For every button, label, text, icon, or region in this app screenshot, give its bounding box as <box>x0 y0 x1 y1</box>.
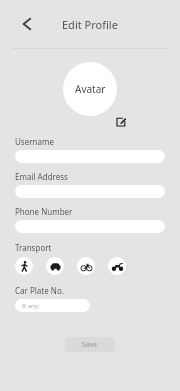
staticText: If any: <box>22 302 40 310</box>
button[interactable]: Phone Number <box>15 220 165 233</box>
button[interactable]: If any: <box>15 299 90 312</box>
staticText: Phone Number <box>15 206 73 217</box>
button[interactable]: Username <box>15 150 165 163</box>
staticText: Email Address <box>15 171 68 182</box>
button[interactable]: Avatar <box>63 62 117 116</box>
button[interactable]: Save <box>65 337 115 352</box>
staticText: Car Plate No. <box>15 285 64 296</box>
button[interactable]: Motorcycle <box>108 257 126 275</box>
button[interactable]: Edit avatar <box>115 116 127 128</box>
staticText: Avatar <box>75 82 106 96</box>
staticText: Save <box>82 340 98 350</box>
button[interactable]: Car <box>46 257 64 275</box>
staticText: Transport <box>15 242 52 253</box>
button[interactable]: Back <box>14 11 40 37</box>
staticText: Username <box>15 136 54 147</box>
button[interactable]: Walk <box>15 257 33 275</box>
button[interactable]: Bicycle <box>77 257 95 275</box>
staticText: Edit Profile <box>62 17 118 32</box>
button[interactable]: Email Address <box>15 185 165 198</box>
